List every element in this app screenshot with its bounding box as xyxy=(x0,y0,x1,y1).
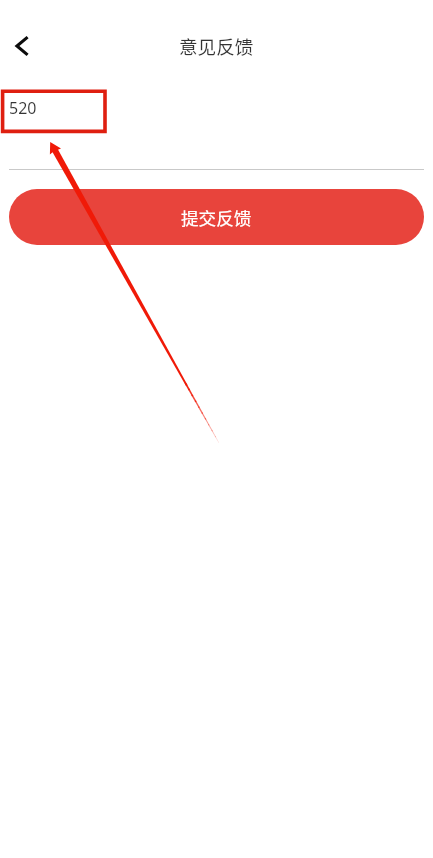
button[interactable]: Back xyxy=(0,24,44,68)
button[interactable]: 提交反馈 xyxy=(9,189,424,245)
staticText: 520 xyxy=(9,97,37,119)
staticText: 提交反馈 xyxy=(181,205,252,230)
staticText: 意见反馈 xyxy=(179,32,254,59)
button[interactable]: 520 xyxy=(0,80,433,168)
